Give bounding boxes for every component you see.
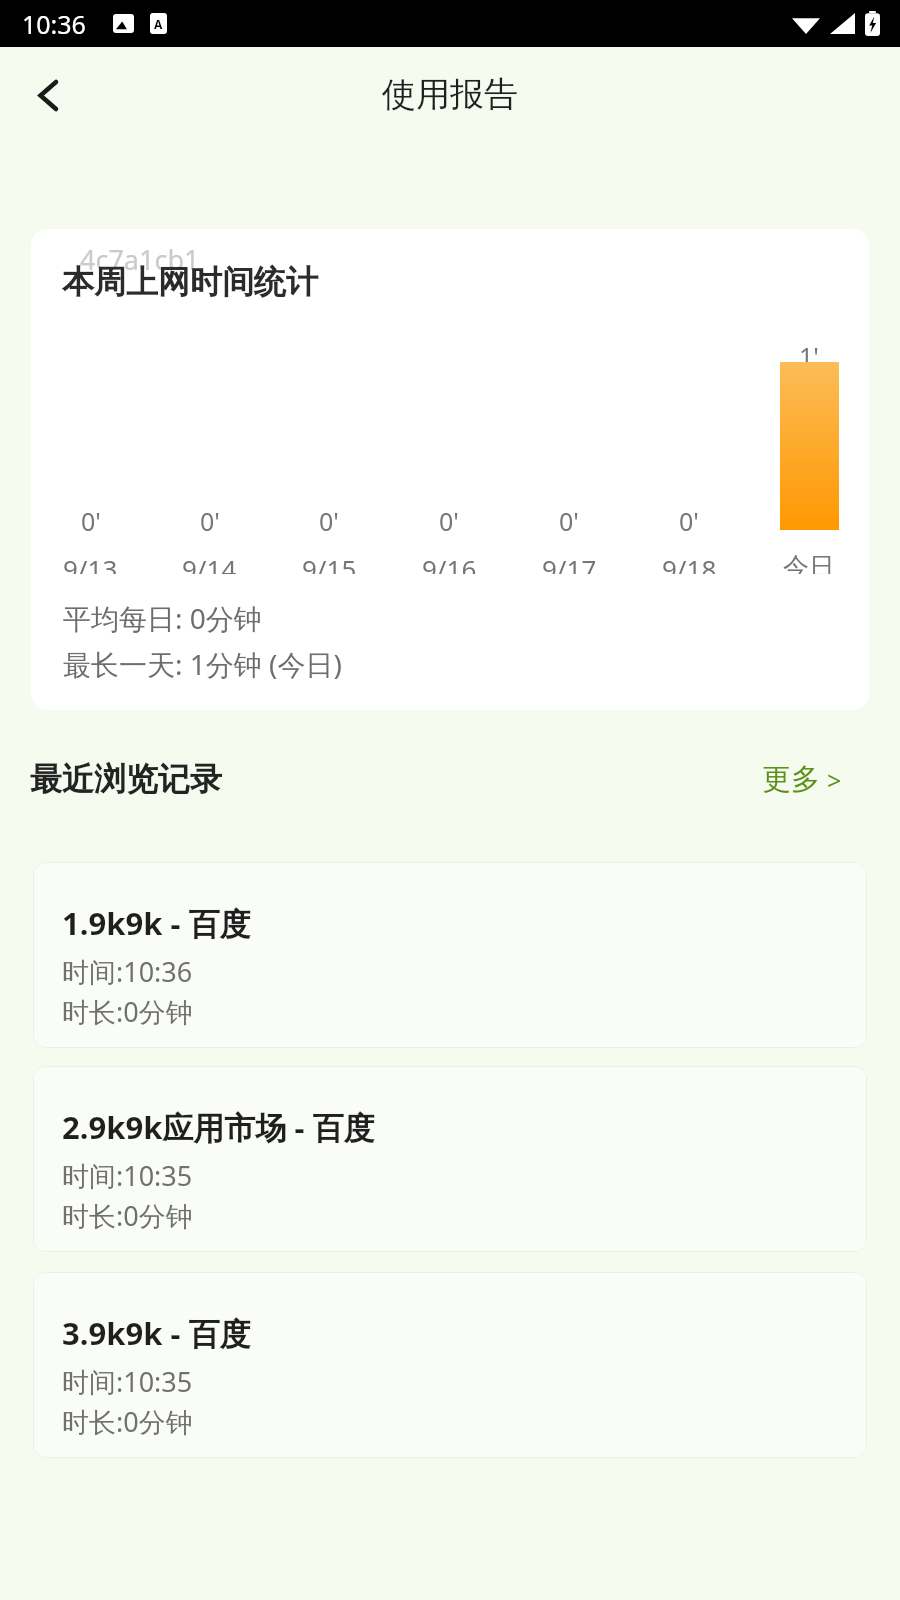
staticText: 9/15 <box>302 551 357 574</box>
staticText: 0' <box>200 504 220 538</box>
staticText: 时长:0分钟 <box>62 1403 193 1440</box>
button[interactable]: 返回 <box>13 61 81 129</box>
staticText: 3.9k9k - 百度 <box>62 1312 251 1354</box>
staticText: 时长:0分钟 <box>62 993 193 1030</box>
staticText: 0' <box>559 504 579 538</box>
staticText: 今日 <box>783 551 835 574</box>
staticText: 9/16 <box>422 551 477 574</box>
staticText: 9/14 <box>182 551 237 574</box>
staticText: 0' <box>319 504 339 538</box>
staticText: 最近浏览记录 <box>30 759 222 799</box>
staticText: 2.9k9k应用市场 - 百度 <box>62 1106 375 1148</box>
button[interactable]: 更多 <box>762 761 842 798</box>
staticText: 0' <box>679 504 699 538</box>
staticText: 更多 <box>762 761 820 798</box>
staticText: 1.9k9k - 百度 <box>62 902 251 944</box>
staticText: 9/18 <box>662 551 717 574</box>
staticText: 0' <box>439 504 459 538</box>
staticText: 平均每日: 0分钟 <box>63 599 262 637</box>
staticText: 9/13 <box>63 551 118 574</box>
staticText: 使用报告 <box>382 73 518 116</box>
staticText: 0' <box>81 504 101 538</box>
staticText: 本周上网时间统计 <box>62 262 318 302</box>
button[interactable]: 4c7a1cb1 <box>31 229 869 710</box>
staticText: 时间:10:35 <box>62 1157 193 1194</box>
button[interactable]: 1.9k9k - 百度 <box>33 862 867 1048</box>
button[interactable]: 2.9k9k应用市场 - 百度 <box>33 1066 867 1252</box>
button[interactable]: 3.9k9k - 百度 <box>33 1272 867 1458</box>
staticText: 9/17 <box>542 551 597 574</box>
staticText: 时间:10:35 <box>62 1363 193 1400</box>
staticText: > <box>827 763 842 797</box>
staticText: 时间:10:36 <box>62 953 193 990</box>
staticText: A <box>154 16 163 32</box>
staticText: 最长一天: 1分钟 (今日) <box>63 645 342 683</box>
staticText: 1' <box>799 339 819 373</box>
staticText: 时长:0分钟 <box>62 1197 193 1234</box>
staticText: 4c7a1cb1 <box>80 241 200 278</box>
staticText: 10:36 <box>22 7 86 41</box>
